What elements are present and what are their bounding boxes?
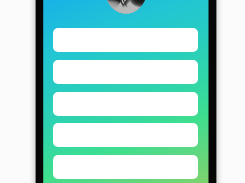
button[interactable]	[53, 92, 198, 116]
button[interactable]	[53, 123, 198, 147]
button[interactable]: Open profile	[106, 0, 146, 13]
button[interactable]	[53, 155, 198, 179]
button[interactable]	[53, 60, 198, 84]
button[interactable]	[53, 28, 198, 52]
